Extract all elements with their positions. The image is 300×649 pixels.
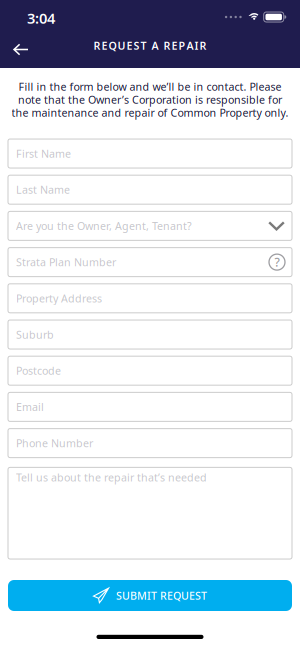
staticText: Email bbox=[16, 400, 44, 414]
staticText: R E Q U E S T A R E P A I R bbox=[93, 38, 206, 53]
button[interactable]: Property Address bbox=[8, 284, 292, 313]
staticText: Tell us about the repair that’s needed bbox=[16, 470, 207, 485]
staticText: 3:04 bbox=[27, 8, 55, 28]
staticText: the maintenance and repair of Common Pro… bbox=[11, 105, 288, 120]
button[interactable]: Suburb bbox=[8, 320, 292, 349]
staticText: note that the Owner’s Corporation is res… bbox=[18, 92, 282, 107]
staticText: Property Address bbox=[16, 291, 102, 305]
button[interactable]: Are you the Owner, Agent, Tenant? bbox=[8, 211, 292, 240]
button[interactable]: Tell us about the repair that’s needed bbox=[8, 467, 292, 559]
button[interactable]: Phone Number bbox=[8, 429, 292, 458]
staticText: Phone Number bbox=[16, 436, 93, 450]
staticText: Suburb bbox=[16, 327, 54, 342]
staticText: Postcode bbox=[16, 364, 61, 378]
staticText: Last Name bbox=[16, 183, 70, 197]
button[interactable]: Postcode bbox=[8, 356, 292, 385]
staticText: ? bbox=[274, 254, 279, 270]
staticText: Fill in the form below and we’ll be in c… bbox=[18, 79, 281, 94]
button[interactable]: Strata Plan Number bbox=[8, 248, 292, 277]
button[interactable]: SUBMIT REQUEST bbox=[8, 580, 292, 611]
button[interactable]: Email bbox=[8, 392, 292, 421]
staticText: SUBMIT REQUEST bbox=[116, 588, 207, 603]
button[interactable]: Help bbox=[269, 254, 285, 270]
staticText: Are you the Owner, Agent, Tenant? bbox=[16, 219, 192, 233]
button[interactable]: Back bbox=[7, 38, 35, 61]
staticText: First Name bbox=[16, 146, 71, 161]
button[interactable]: Last Name bbox=[8, 175, 292, 204]
button[interactable]: First Name bbox=[8, 139, 292, 168]
staticText: Strata Plan Number bbox=[16, 255, 116, 269]
